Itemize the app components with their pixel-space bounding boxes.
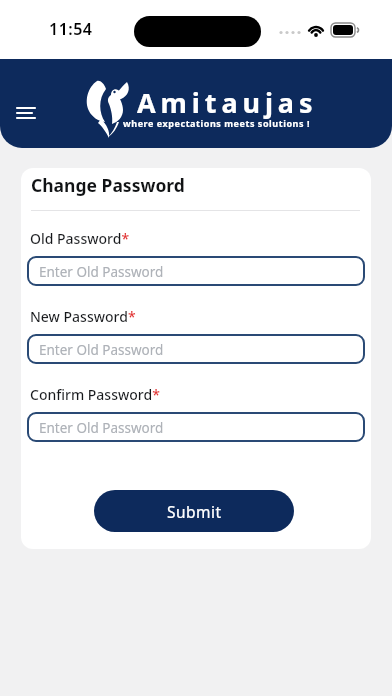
staticText: Enter Old Password bbox=[39, 263, 164, 281]
button[interactable]: Enter Old Password bbox=[27, 334, 365, 364]
button[interactable]: Submit bbox=[94, 490, 294, 532]
staticText: 11:54 bbox=[49, 18, 93, 40]
staticText: Submit bbox=[167, 501, 222, 522]
staticText: where expectations meets solutions ! bbox=[123, 117, 311, 129]
staticText: Change Password bbox=[31, 173, 185, 197]
staticText: Enter Old Password bbox=[39, 419, 164, 437]
button[interactable] bbox=[12, 103, 42, 125]
button[interactable]: Enter Old Password bbox=[27, 256, 365, 286]
staticText: Confirm Password* bbox=[30, 385, 160, 404]
staticText: Enter Old Password bbox=[39, 341, 164, 359]
staticText: Amitaujas bbox=[137, 84, 318, 121]
staticText: Old Password* bbox=[30, 229, 130, 248]
staticText: New Password* bbox=[30, 307, 136, 326]
button[interactable]: Enter Old Password bbox=[27, 412, 365, 442]
